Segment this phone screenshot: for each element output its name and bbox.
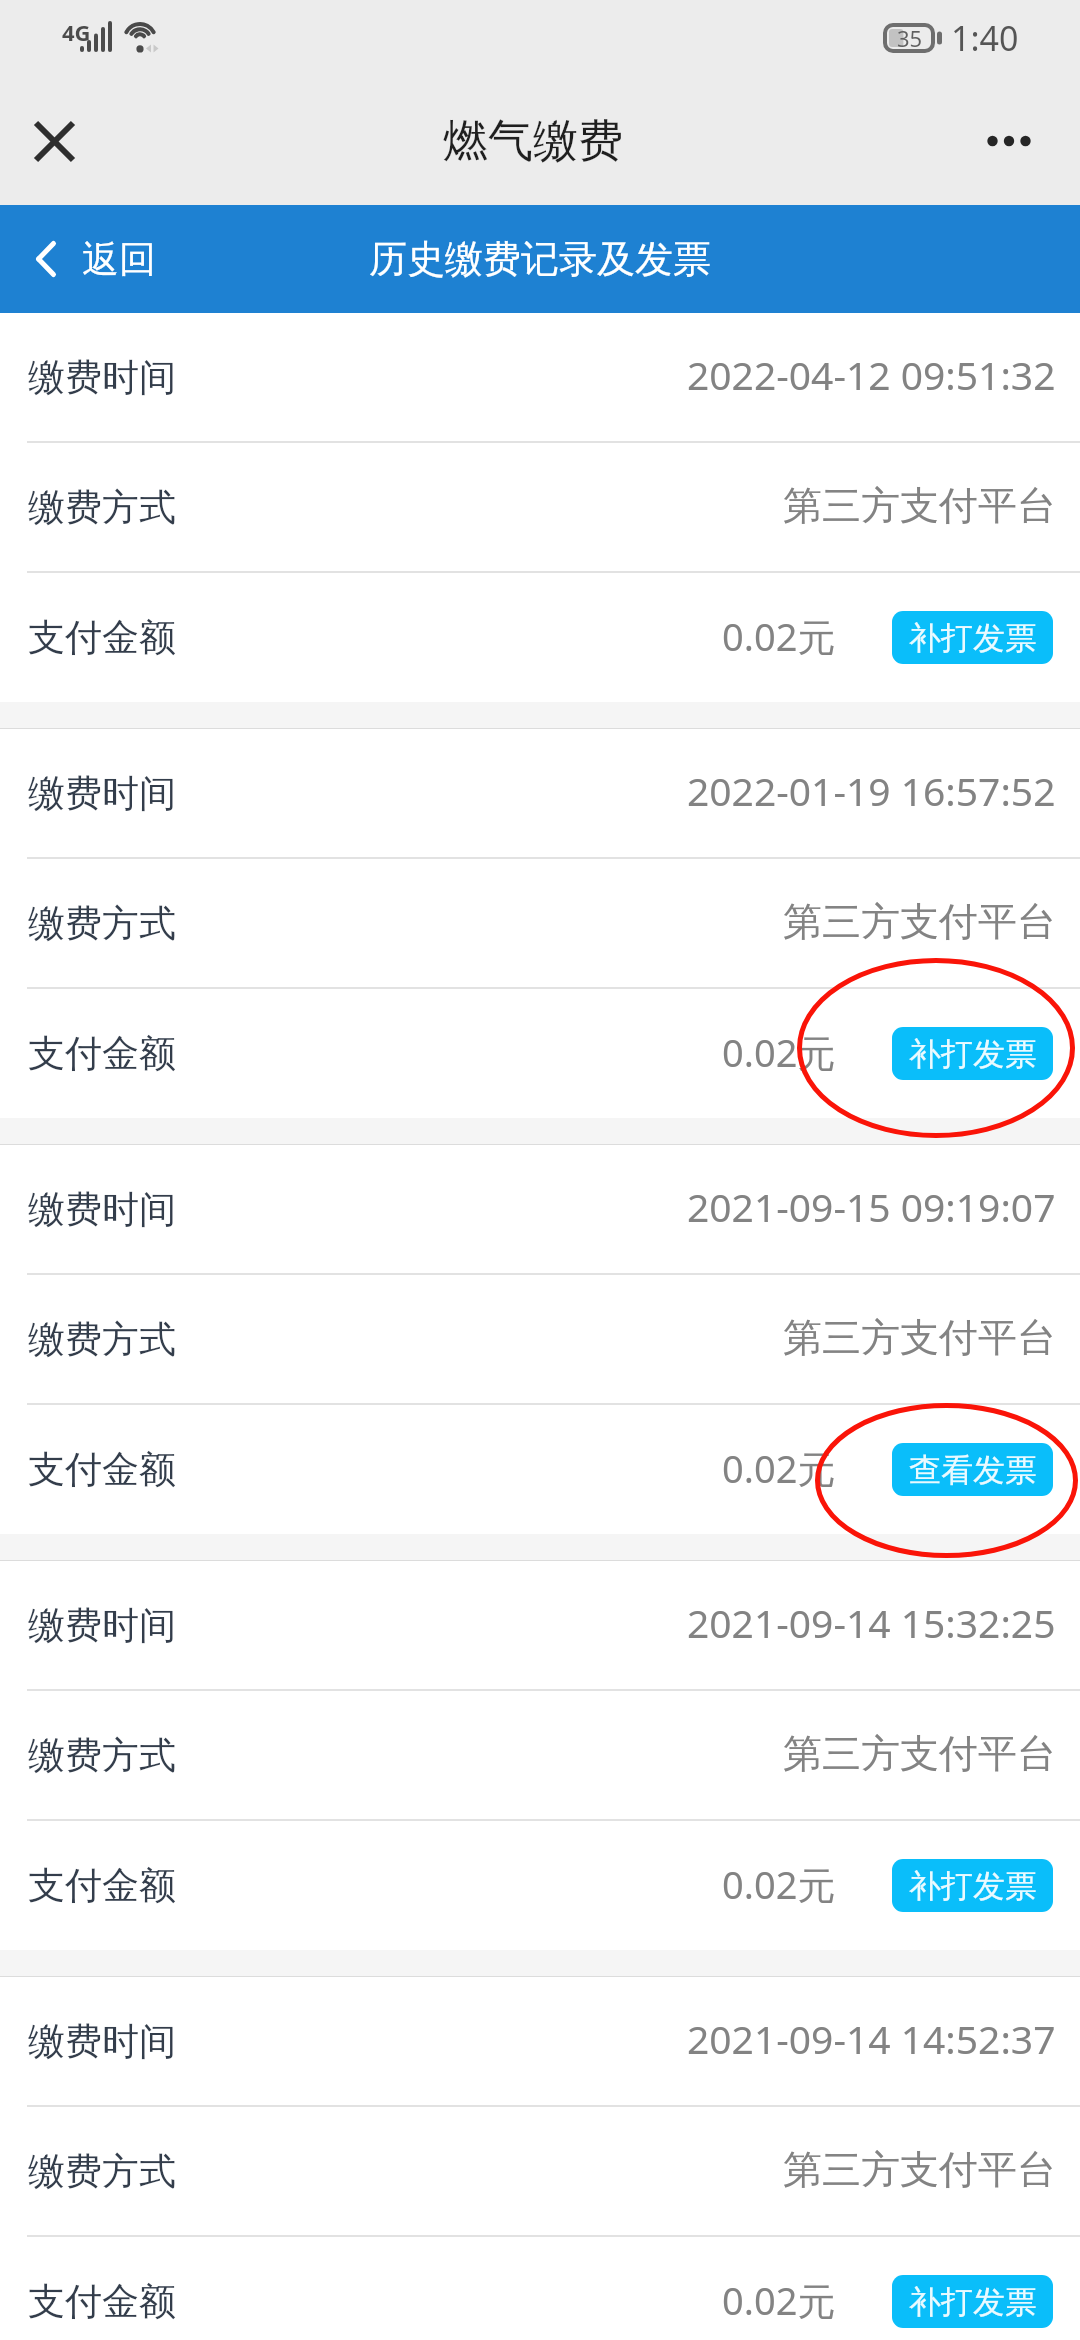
button[interactable]: 缴费时间 <box>0 1561 1080 1689</box>
staticText: 缴费方式 <box>28 900 176 947</box>
staticText: 0.02元 <box>722 1026 836 1078</box>
staticText: 缴费时间 <box>28 2018 176 2065</box>
button[interactable]: More options <box>972 111 1062 171</box>
staticText: 支付金额 <box>28 1862 176 1909</box>
button[interactable]: 缴费方式 <box>0 443 1080 571</box>
staticText: 历史缴费记录及发票 <box>369 235 711 283</box>
button[interactable]: 返回 <box>0 205 178 313</box>
staticText: 0.02元 <box>722 1858 836 1910</box>
button[interactable]: 补打发票 <box>892 2275 1053 2328</box>
staticText: 补打发票 <box>909 1034 1037 1074</box>
staticText: 缴费时间 <box>28 770 176 817</box>
staticText: 2022-01-19 16:57:52 <box>687 764 1056 817</box>
staticText: 0.02元 <box>722 2274 836 2326</box>
staticText: 2022-04-12 09:51:32 <box>687 348 1056 401</box>
staticText: 第三方支付平台 <box>783 481 1056 530</box>
staticText: 第三方支付平台 <box>783 897 1056 946</box>
button[interactable]: 缴费方式 <box>0 2107 1080 2235</box>
button[interactable]: 缴费方式 <box>0 1691 1080 1819</box>
button[interactable]: 缴费时间 <box>0 313 1080 441</box>
staticText: 2021-09-14 14:52:37 <box>687 2012 1056 2065</box>
staticText: 支付金额 <box>28 1446 176 1493</box>
staticText: 2021-09-14 15:32:25 <box>687 1596 1056 1649</box>
staticText: 缴费时间 <box>28 1186 176 1233</box>
staticText: 第三方支付平台 <box>783 1729 1056 1778</box>
staticText: 支付金额 <box>28 2278 176 2325</box>
staticText: 缴费时间 <box>28 354 176 401</box>
button[interactable]: 缴费方式 <box>0 1275 1080 1403</box>
button[interactable]: 补打发票 <box>892 1027 1053 1080</box>
staticText: 返回 <box>82 236 156 283</box>
staticText: 缴费方式 <box>28 2148 176 2195</box>
staticText: 1:40 <box>951 15 1019 61</box>
staticText: 0.02元 <box>722 1442 836 1494</box>
button[interactable]: 缴费方式 <box>0 859 1080 987</box>
button[interactable]: 缴费时间 <box>0 729 1080 857</box>
button[interactable]: Close <box>14 101 95 182</box>
staticText: 0.02元 <box>722 610 836 662</box>
button[interactable]: 补打发票 <box>892 1859 1053 1912</box>
staticText: 补打发票 <box>909 1866 1037 1906</box>
staticText: 缴费方式 <box>28 484 176 531</box>
staticText: 第三方支付平台 <box>783 1313 1056 1362</box>
button[interactable]: 补打发票 <box>892 611 1053 664</box>
staticText: 查看发票 <box>909 1450 1037 1490</box>
button[interactable]: 缴费时间 <box>0 1145 1080 1273</box>
staticText: 2021-09-15 09:19:07 <box>687 1180 1056 1233</box>
staticText: 燃气缴费 <box>443 113 623 170</box>
button[interactable]: 查看发票 <box>892 1443 1053 1496</box>
staticText: 支付金额 <box>28 614 176 661</box>
staticText: 缴费方式 <box>28 1732 176 1779</box>
staticText: 缴费方式 <box>28 1316 176 1363</box>
staticText: 支付金额 <box>28 1030 176 1077</box>
staticText: 4G <box>62 17 91 47</box>
staticText: 补打发票 <box>909 618 1037 658</box>
staticText: 35 <box>897 23 923 53</box>
staticText: 缴费时间 <box>28 1602 176 1649</box>
staticText: 补打发票 <box>909 2282 1037 2322</box>
button[interactable]: 缴费时间 <box>0 1977 1080 2105</box>
staticText: 第三方支付平台 <box>783 2145 1056 2194</box>
